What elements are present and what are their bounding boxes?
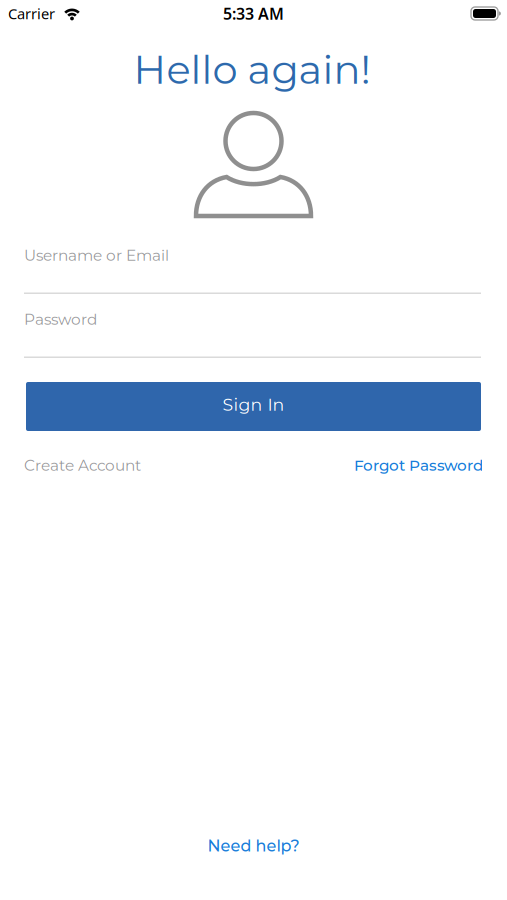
staticText: Forgot Password xyxy=(354,456,483,475)
staticText: Hello again! xyxy=(133,45,370,94)
button[interactable]: Password xyxy=(24,310,481,358)
staticText: Need help? xyxy=(207,836,299,855)
staticText: Username or Email xyxy=(24,246,169,265)
staticText: 5:33 AM xyxy=(223,3,284,24)
staticText: Carrier xyxy=(8,4,55,23)
button[interactable]: Create Account xyxy=(24,456,141,475)
staticText: Create Account xyxy=(24,456,141,475)
button[interactable]: Username or Email xyxy=(24,246,481,294)
button[interactable]: Forgot Password xyxy=(354,456,483,475)
staticText: Sign In xyxy=(222,394,284,415)
staticText: Password xyxy=(24,310,97,329)
button[interactable]: Sign In xyxy=(26,382,481,431)
button[interactable]: Need help? xyxy=(207,836,299,855)
